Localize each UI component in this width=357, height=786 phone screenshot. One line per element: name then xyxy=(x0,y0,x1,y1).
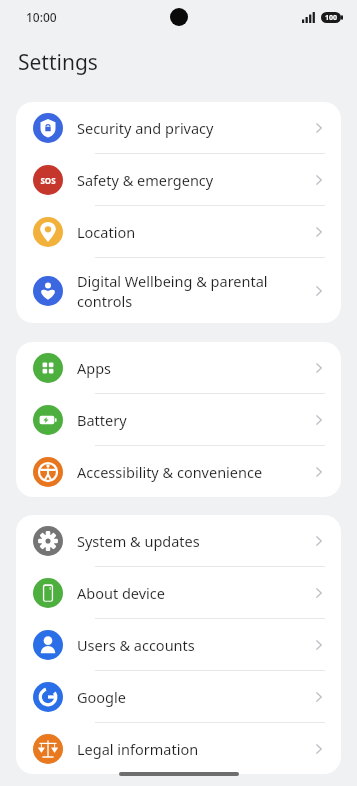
button[interactable]: Battery xyxy=(16,394,341,445)
staticText: Accessibility & convenience xyxy=(77,462,305,482)
staticText: Users & accounts xyxy=(77,635,305,655)
staticText: SOS xyxy=(40,175,56,186)
button[interactable]: Apps xyxy=(16,342,341,393)
button[interactable]: Google xyxy=(16,671,341,722)
button[interactable]: Location xyxy=(16,206,341,257)
staticText: 100 xyxy=(325,13,338,23)
button[interactable]: Security and privacy xyxy=(16,102,341,153)
staticText: 10:00 xyxy=(26,9,57,25)
staticText: Legal information xyxy=(77,739,305,759)
staticText: System & updates xyxy=(77,531,305,551)
button[interactable]: SOS xyxy=(16,154,341,205)
staticText: Safety & emergency xyxy=(77,170,305,190)
button[interactable]: About device xyxy=(16,567,341,618)
button[interactable]: Digital Wellbeing & parental controls xyxy=(16,258,341,323)
staticText: Battery xyxy=(77,410,305,430)
staticText: Apps xyxy=(77,358,305,378)
staticText: Security and privacy xyxy=(77,118,305,138)
button[interactable]: System & updates xyxy=(16,515,341,566)
staticText: Location xyxy=(77,222,305,242)
staticText: Google xyxy=(77,687,305,707)
staticText: Settings xyxy=(18,48,98,77)
staticText: About device xyxy=(77,583,305,603)
button[interactable]: Users & accounts xyxy=(16,619,341,670)
staticText: Digital Wellbeing & parental controls xyxy=(77,271,305,311)
button[interactable]: Accessibility & convenience xyxy=(16,446,341,497)
button[interactable]: Legal information xyxy=(16,723,341,774)
